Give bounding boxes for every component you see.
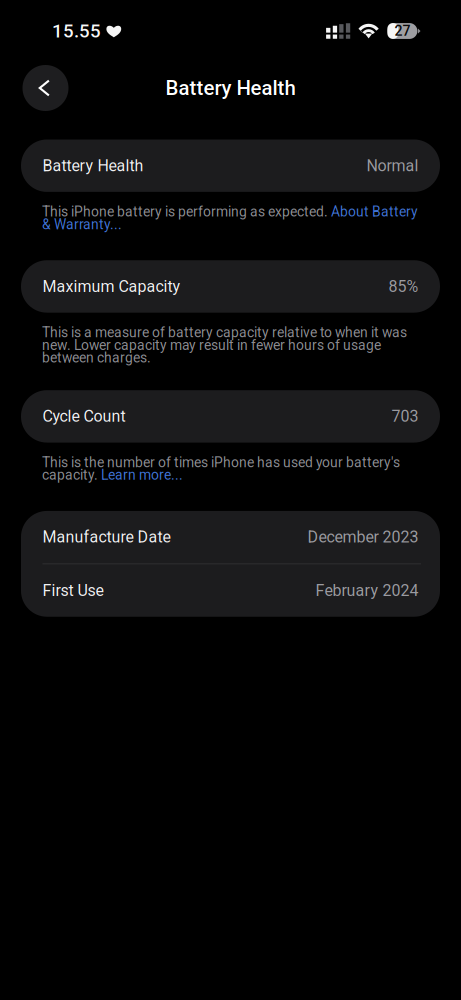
staticText: Battery Health (42, 157, 143, 175)
staticText: Maximum Capacity (42, 277, 180, 295)
staticText: Battery Health (165, 77, 295, 99)
staticText: 85% (388, 277, 418, 295)
staticText: 15.55 (52, 21, 101, 41)
staticText: February 2024 (315, 582, 418, 599)
staticText: December 2023 (307, 528, 418, 546)
button[interactable]: Back (22, 65, 68, 111)
staticText: 27 (394, 23, 410, 38)
staticText: This is a measure of battery capacity re… (42, 326, 407, 364)
button[interactable]: Cycle Count (21, 390, 440, 443)
staticText: First Use (42, 582, 103, 599)
button[interactable]: First Use (21, 564, 440, 617)
staticText: This iPhone battery is performing as exp… (42, 205, 418, 231)
staticText: Normal (366, 157, 418, 175)
staticText: 703 (391, 407, 418, 425)
button[interactable]: Maximum Capacity (21, 260, 440, 313)
button[interactable]: Battery Health (21, 139, 440, 192)
staticText: Cycle Count (42, 407, 125, 425)
button[interactable]: Manufacture Date (21, 511, 440, 563)
staticText: This is the number of times iPhone has u… (42, 456, 400, 481)
staticText: Manufacture Date (42, 528, 170, 546)
